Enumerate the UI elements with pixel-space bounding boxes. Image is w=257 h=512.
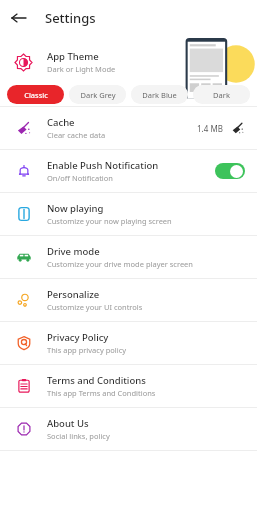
- staticText: Terms and Conditions: [47, 374, 146, 387]
- staticText: Cache: [47, 116, 75, 129]
- button[interactable]: Back: [8, 7, 30, 29]
- staticText: Customize your drive mode player screen: [47, 259, 193, 269]
- staticText: 1.4 MB: [197, 123, 223, 134]
- staticText: On/off Notification: [47, 173, 113, 183]
- button[interactable]: Dark Blue: [131, 85, 188, 104]
- staticText: Settings: [45, 9, 96, 27]
- staticText: This app privacy policy: [47, 345, 127, 355]
- staticText: Dark Grey: [80, 90, 116, 100]
- staticText: Social links, policy: [47, 431, 110, 441]
- staticText: App Theme: [47, 50, 99, 63]
- staticText: Drive mode: [47, 245, 100, 258]
- button[interactable]: Drive mode: [0, 236, 257, 278]
- button[interactable]: Cache: [0, 107, 257, 149]
- button[interactable]: Dark Grey: [69, 85, 126, 104]
- button[interactable]: Privacy Policy: [0, 322, 257, 364]
- staticText: Dark or Light Mode: [47, 64, 116, 74]
- staticText: About Us: [47, 417, 89, 430]
- staticText: Personalize: [47, 288, 100, 301]
- staticText: Classic: [24, 90, 48, 100]
- staticText: Dark Blue: [142, 90, 177, 100]
- button[interactable]: Enable Push Notification toggle: [215, 163, 245, 179]
- button[interactable]: Personalize: [0, 279, 257, 321]
- staticText: Enable Push Notification: [47, 159, 159, 172]
- button[interactable]: App Theme: [0, 36, 257, 88]
- button[interactable]: Enable Push Notification: [0, 150, 257, 192]
- button[interactable]: Terms and Conditions: [0, 365, 257, 407]
- staticText: Customize your now playing screen: [47, 216, 172, 226]
- button[interactable]: Now playing: [0, 193, 257, 235]
- staticText: Clear cache data: [47, 130, 106, 140]
- button[interactable]: Classic: [7, 85, 64, 104]
- staticText: Now playing: [47, 202, 104, 215]
- staticText: Privacy Policy: [47, 331, 109, 344]
- button[interactable]: Dark: [193, 85, 250, 104]
- button[interactable]: About Us: [0, 408, 257, 450]
- staticText: Dark: [213, 90, 230, 100]
- staticText: This app Terms and Conditions: [47, 388, 156, 398]
- staticText: Customize your UI controls: [47, 302, 143, 312]
